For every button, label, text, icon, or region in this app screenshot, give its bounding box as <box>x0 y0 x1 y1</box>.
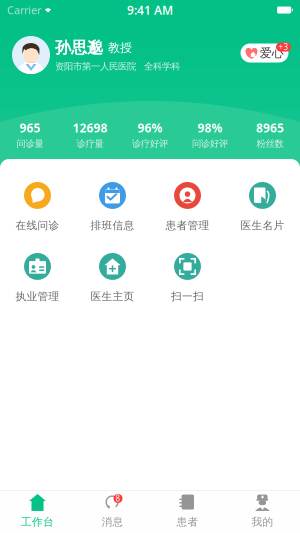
staticText: 执业管理 <box>15 290 59 303</box>
staticText: 我的 <box>251 515 273 528</box>
staticText: 问诊量 <box>16 138 43 149</box>
staticText: 8965 <box>256 120 284 136</box>
staticText: 粉丝数 <box>256 138 283 149</box>
button[interactable]: 医生名片 <box>225 184 300 230</box>
staticText: +3 <box>278 42 288 52</box>
button[interactable]: 医生主页 <box>75 255 150 301</box>
staticText: 全科学科 <box>144 61 180 72</box>
staticText: 患者管理 <box>165 219 209 232</box>
button[interactable]: 扫一扫 <box>150 255 225 301</box>
staticText: 医生主页 <box>90 290 134 303</box>
staticText: 诊疗好评 <box>132 138 168 149</box>
staticText: 在线问诊 <box>15 219 59 232</box>
staticText: 爱心 <box>260 46 284 60</box>
staticText: 患者 <box>176 515 198 528</box>
button[interactable]: 我的 <box>225 491 300 533</box>
staticText: 诊疗量 <box>76 138 103 149</box>
button[interactable]: 患者 <box>150 491 225 533</box>
staticText: 消息 <box>101 515 123 528</box>
button[interactable]: 执业管理 <box>0 255 75 301</box>
button[interactable]: 爱心 <box>238 42 291 67</box>
button[interactable]: 在线问诊 <box>0 184 75 230</box>
staticText: 9:41 AM <box>127 2 173 18</box>
button[interactable]: 患者管理 <box>150 184 225 230</box>
staticText: 教授 <box>108 40 132 55</box>
staticText: 扫一扫 <box>171 290 204 303</box>
staticText: 98% <box>197 120 222 136</box>
staticText: 问诊好评 <box>192 138 228 149</box>
button[interactable]: 工作台 <box>0 491 75 533</box>
staticText: 医生名片 <box>240 219 284 232</box>
staticText: 8 <box>115 493 120 504</box>
staticText: 孙思邈 <box>55 38 103 58</box>
button[interactable]: 排班信息 <box>75 184 150 230</box>
staticText: 资阳市第一人民医院 <box>55 61 136 72</box>
staticText: 96% <box>137 120 162 136</box>
staticText: Carrier <box>7 3 41 17</box>
staticText: 排班信息 <box>90 219 134 232</box>
staticText: 12698 <box>72 120 107 136</box>
staticText: 965 <box>19 120 40 136</box>
button[interactable]: 8 <box>75 491 150 533</box>
staticText: 工作台 <box>21 515 54 528</box>
